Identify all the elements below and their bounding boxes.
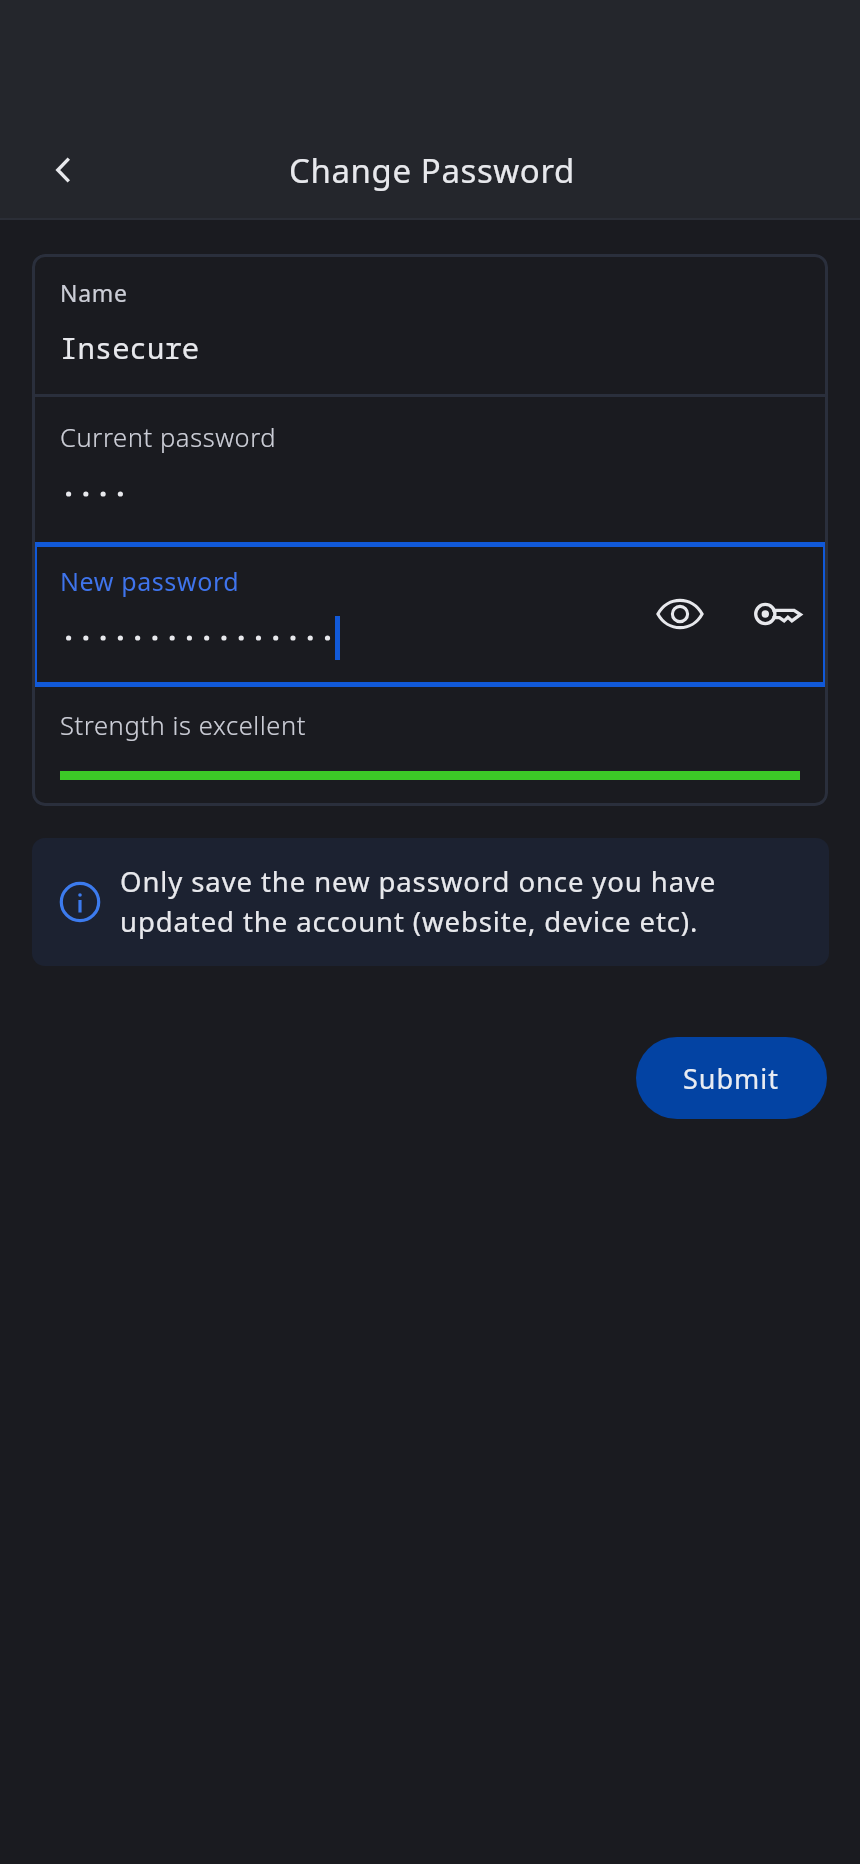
staticText: Name	[60, 277, 128, 308]
button[interactable]: New password	[32, 542, 828, 687]
button[interactable]: Back	[22, 128, 106, 212]
staticText: Change Password	[289, 148, 575, 193]
staticText: New password	[60, 564, 240, 598]
staticText: Insecure	[60, 328, 200, 367]
staticText: Strength is excellent	[60, 708, 307, 743]
button[interactable]: Name	[32, 254, 828, 394]
button[interactable]: Submit	[636, 1037, 827, 1119]
staticText: Submit	[683, 1060, 780, 1097]
staticText: Current password	[60, 420, 277, 455]
button[interactable]: Current password	[32, 396, 828, 542]
button[interactable]: Generate password	[739, 576, 815, 652]
button[interactable]: Show password	[642, 576, 718, 652]
staticText: Only save the new password once you have…	[120, 863, 717, 940]
button[interactable]: Only save the new password once you have…	[32, 838, 829, 966]
